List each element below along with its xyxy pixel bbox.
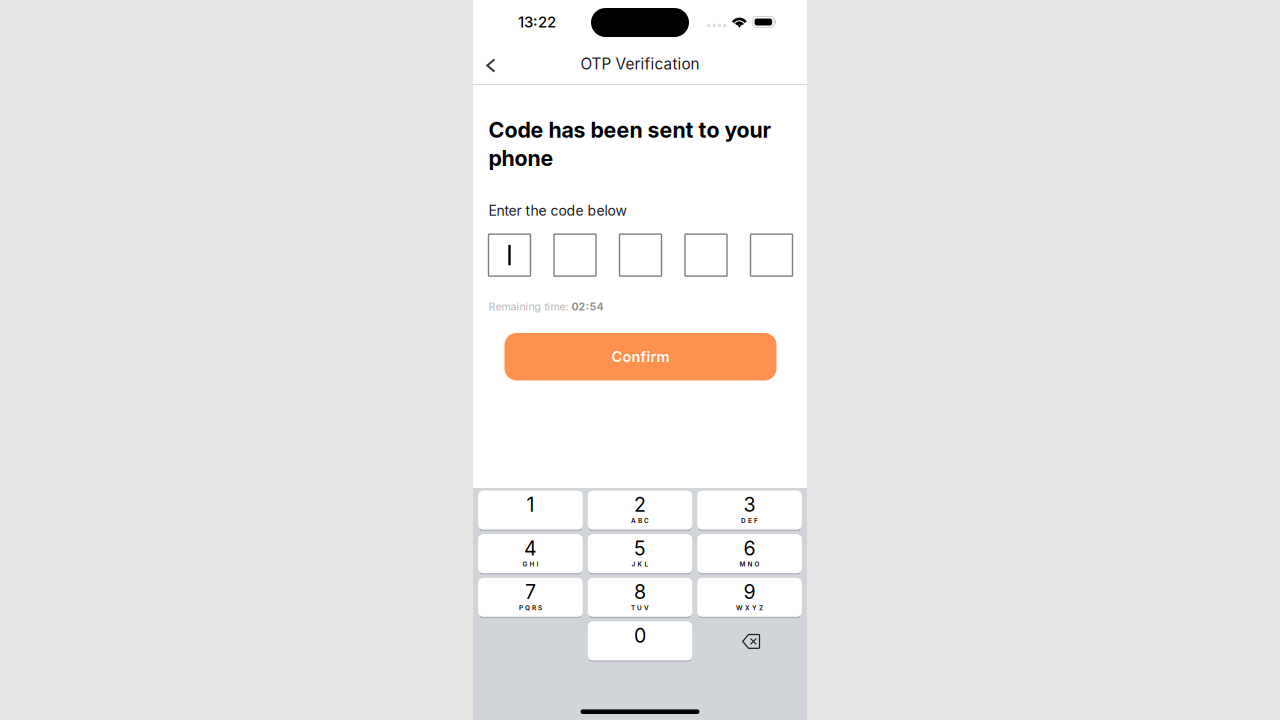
staticText: Remaining time: <box>488 300 571 313</box>
staticText: 2 <box>634 493 646 517</box>
staticText: A B C <box>631 517 649 524</box>
staticText: 4 <box>524 536 537 560</box>
button[interactable]: Delete <box>697 622 802 661</box>
button[interactable]: Code digit <box>619 234 661 276</box>
button[interactable]: Back <box>473 42 507 85</box>
staticText: 9 <box>743 580 755 604</box>
button[interactable]: 5 <box>588 535 692 574</box>
staticText: Code has been sent to your phone <box>488 117 771 171</box>
button[interactable]: 8 <box>588 578 692 617</box>
staticText: D E F <box>741 517 758 524</box>
button[interactable]: 2 <box>588 491 692 530</box>
staticText: 5 <box>634 536 646 560</box>
staticText: M N O <box>739 560 759 568</box>
staticText: 02:54 <box>571 300 603 313</box>
button[interactable]: 1 <box>478 491 583 530</box>
staticText: P Q R S <box>519 604 542 612</box>
staticText: 8 <box>634 580 646 604</box>
button[interactable]: Code digit <box>750 234 792 276</box>
button[interactable]: Code digit <box>554 234 596 276</box>
staticText: 1 <box>526 493 534 517</box>
button[interactable]: Confirm <box>504 333 776 380</box>
button[interactable]: 0 <box>588 622 692 661</box>
staticText: J K L <box>631 560 648 568</box>
button[interactable]: Code digit <box>685 234 727 276</box>
staticText: W X Y Z <box>736 604 763 612</box>
button[interactable]: 3 <box>697 491 802 530</box>
staticText: 3 <box>743 493 755 517</box>
staticText: 7 <box>525 580 536 604</box>
staticText: T U V <box>631 604 649 612</box>
button[interactable]: 4 <box>478 535 583 574</box>
staticText: 0 <box>634 624 646 647</box>
button[interactable]: 7 <box>478 578 583 617</box>
button[interactable]: Code digit <box>488 234 530 276</box>
staticText: Enter the code below <box>488 202 626 219</box>
staticText: 13:22 <box>518 13 556 31</box>
staticText: OTP Verification <box>580 55 699 73</box>
staticText: 6 <box>743 536 755 560</box>
staticText: G H I <box>522 560 538 568</box>
staticText: Confirm <box>611 348 669 366</box>
button[interactable]: 9 <box>697 578 802 617</box>
button[interactable]: 6 <box>697 535 802 574</box>
